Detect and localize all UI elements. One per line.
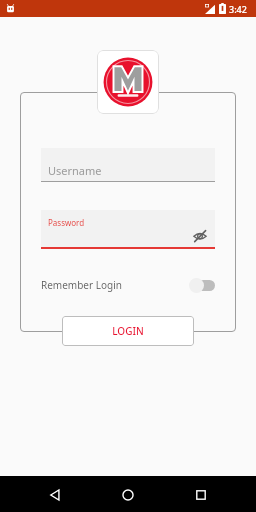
staticText: 3:42 (229, 3, 247, 15)
staticText: Username (48, 163, 102, 178)
staticText: Remember Login (41, 278, 122, 292)
button[interactable]: Home (121, 488, 135, 502)
button[interactable]: LOGIN (62, 316, 194, 346)
button[interactable]: Username (41, 148, 215, 182)
button[interactable]: Recent apps (194, 488, 208, 502)
staticText: Password (48, 217, 85, 228)
button[interactable]: Show password (191, 227, 209, 245)
staticText: LOGIN (112, 324, 144, 338)
button[interactable]: Remember Login (41, 274, 215, 296)
button[interactable]: Back (48, 488, 62, 502)
button[interactable]: Remember Login toggle (189, 277, 215, 293)
button[interactable]: Password (41, 210, 215, 248)
